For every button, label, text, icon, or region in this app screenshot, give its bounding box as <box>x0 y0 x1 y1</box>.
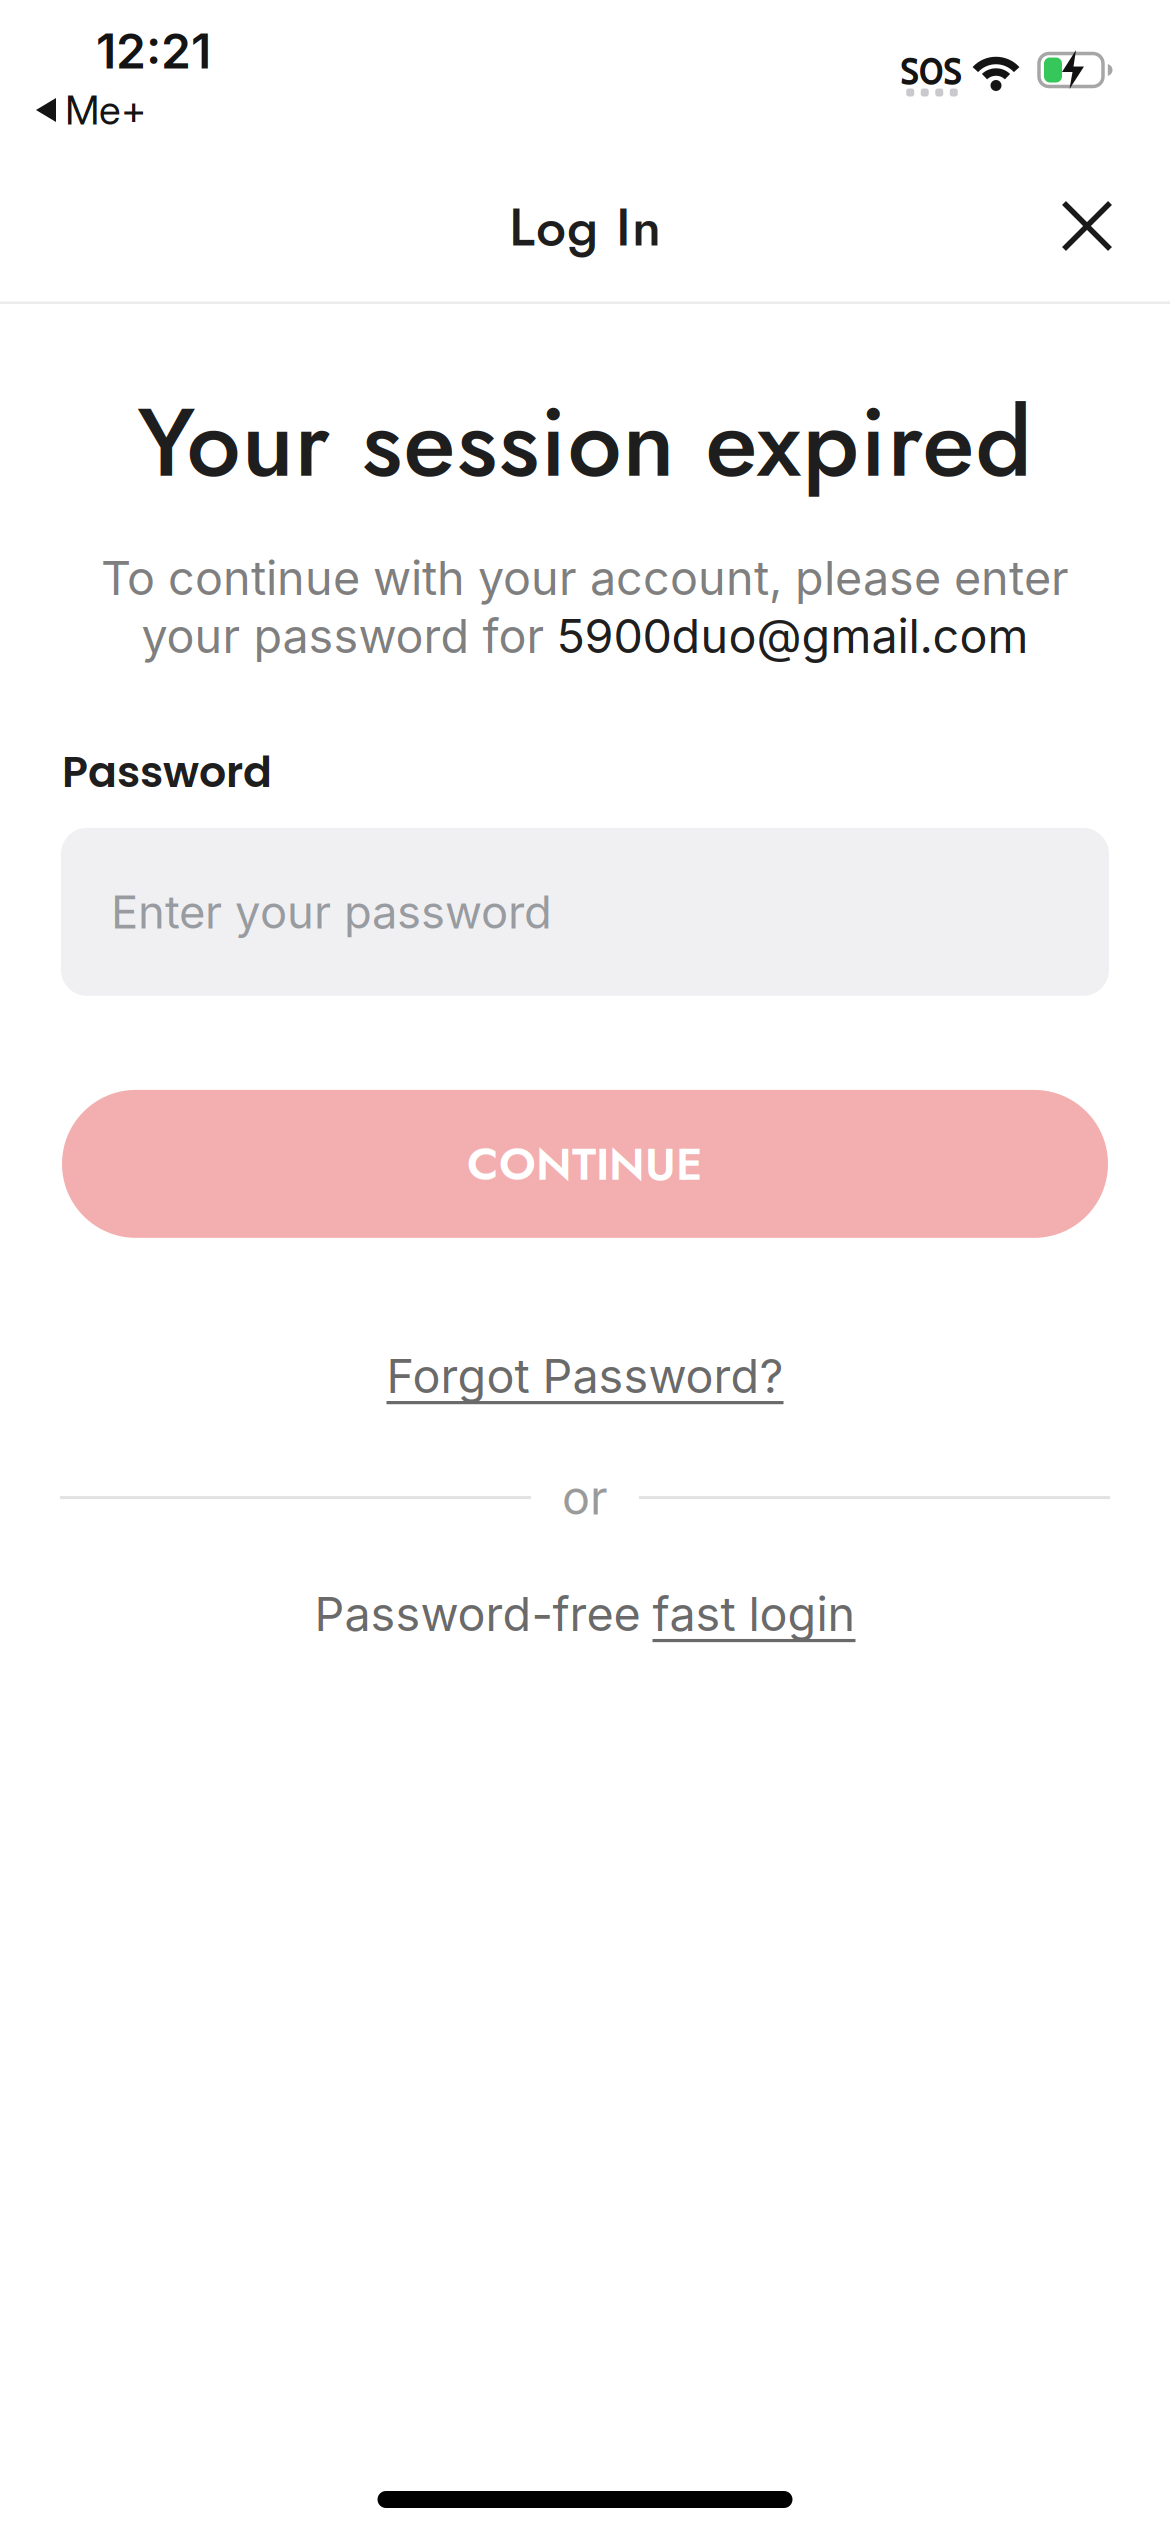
button[interactable]: CONTINUE <box>62 1090 1108 1238</box>
button[interactable]: Enter your password <box>61 828 1109 996</box>
staticText: 5900duo@gmail.com <box>556 608 1028 664</box>
staticText: Password <box>62 742 272 802</box>
staticText: your password for <box>141 608 544 664</box>
staticText: Your session expired <box>137 373 1032 512</box>
button[interactable]: Back to Me+ <box>36 86 146 134</box>
staticText: Enter your password <box>111 884 552 939</box>
staticText: 12:21 <box>96 22 211 80</box>
staticText: Password-free <box>314 1586 640 1642</box>
staticText: Forgot Password? <box>386 1348 783 1404</box>
button[interactable]: Forgot Password? <box>386 1348 783 1404</box>
staticText: SOS <box>900 48 962 94</box>
button[interactable]: Close <box>1064 203 1110 249</box>
staticText: fast login <box>652 1586 855 1642</box>
staticText: To continue with your account, please en… <box>101 550 1069 606</box>
button[interactable]: Password-free <box>314 1586 855 1642</box>
staticText: or <box>562 1469 608 1526</box>
staticText: CONTINUE <box>467 1131 703 1197</box>
staticText: Me+ <box>65 86 146 134</box>
staticText: Log In <box>509 188 661 266</box>
